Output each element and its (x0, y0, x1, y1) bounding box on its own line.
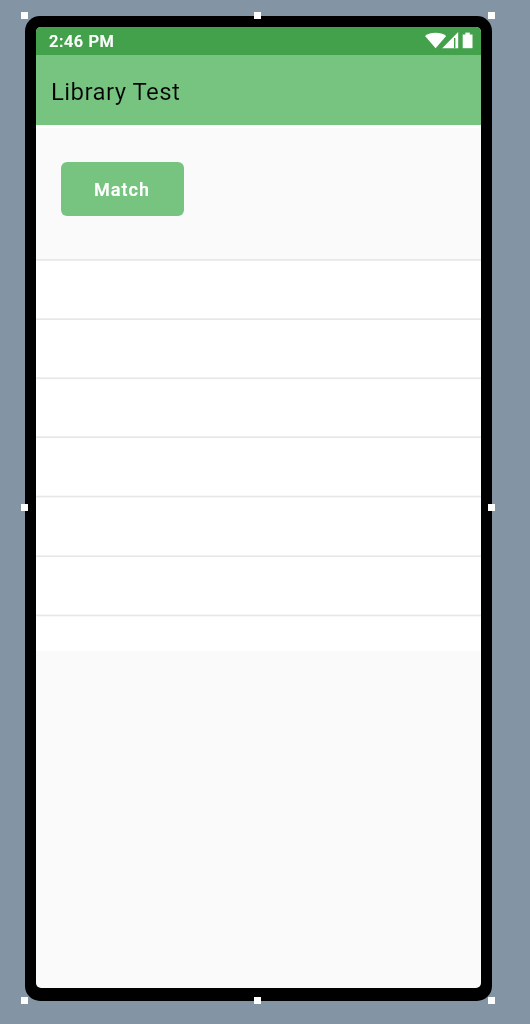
button[interactable] (36, 436, 481, 495)
staticText: 2:46 PM (49, 32, 115, 51)
button[interactable] (36, 614, 481, 650)
button[interactable] (36, 318, 481, 377)
button[interactable] (36, 555, 481, 614)
button[interactable] (36, 259, 481, 318)
button[interactable]: Match (61, 162, 184, 216)
button[interactable] (36, 495, 481, 555)
button[interactable] (36, 377, 481, 436)
staticText: Library Test (51, 78, 181, 106)
staticText: Match (94, 179, 150, 200)
other: Wifi, cellular signal and battery status (36, 27, 481, 55)
